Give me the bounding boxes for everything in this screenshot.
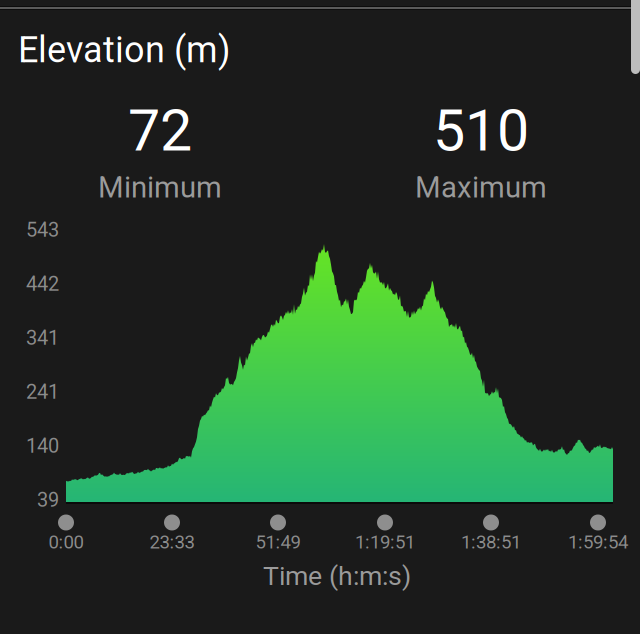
staticText: 341 [26, 326, 59, 350]
staticText: Minimum [98, 170, 222, 205]
button[interactable]: Elevation profile chart [66, 230, 613, 502]
staticText: 543 [26, 218, 59, 242]
staticText: 51:49 [255, 531, 300, 553]
button[interactable]: 510 [331, 103, 631, 199]
staticText: 72 [128, 97, 192, 164]
staticText: Elevation (m) [18, 29, 231, 71]
staticText: 0:00 [48, 531, 83, 553]
staticText: 442 [26, 272, 59, 296]
staticText: 23:33 [149, 531, 194, 553]
staticText: 1:59:54 [568, 531, 628, 553]
button[interactable]: Elevation (m) [18, 24, 614, 76]
staticText: 140 [26, 434, 59, 458]
staticText: 39 [37, 488, 59, 512]
staticText: 1:38:51 [461, 531, 521, 553]
staticText: 1:19:51 [355, 531, 415, 553]
staticText: Maximum [415, 170, 547, 205]
staticText: Time (h:m:s) [263, 560, 411, 592]
staticText: 241 [26, 380, 59, 404]
button[interactable]: 72 [10, 103, 310, 199]
staticText: 510 [433, 97, 529, 164]
